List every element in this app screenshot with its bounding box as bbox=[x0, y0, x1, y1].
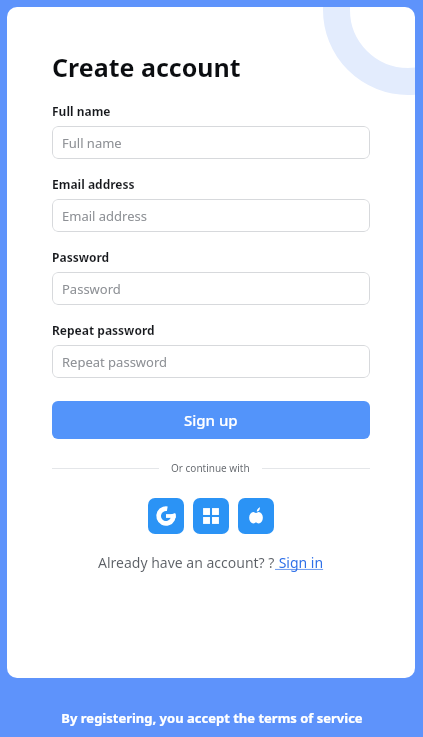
staticText: Sign in bbox=[275, 553, 324, 572]
staticText: Or continue with bbox=[171, 461, 250, 475]
button[interactable]: Full name bbox=[52, 126, 370, 159]
staticText: Password bbox=[52, 249, 110, 265]
staticText: By registering, you accept the terms of … bbox=[61, 709, 363, 727]
staticText: Already have an account? ? bbox=[98, 553, 275, 572]
button[interactable]: Sign up with Google bbox=[148, 498, 184, 534]
button[interactable]: Repeat password bbox=[52, 345, 370, 378]
button[interactable]: Sign up with Apple bbox=[238, 498, 274, 534]
button[interactable]: Sign in bbox=[275, 553, 324, 572]
staticText: Email address bbox=[52, 176, 135, 192]
button[interactable]: Sign up bbox=[52, 401, 370, 439]
staticText: Repeat password bbox=[62, 353, 168, 371]
staticText: Repeat password bbox=[52, 322, 155, 338]
staticText: Full name bbox=[62, 134, 122, 152]
button[interactable]: Email address bbox=[52, 199, 370, 232]
staticText: Password bbox=[62, 280, 121, 298]
staticText: Sign up bbox=[184, 410, 238, 430]
button[interactable]: Password bbox=[52, 272, 370, 305]
staticText: Email address bbox=[62, 207, 147, 225]
button[interactable]: Sign up with Microsoft bbox=[193, 498, 229, 534]
staticText: Full name bbox=[52, 103, 111, 119]
staticText: Create account bbox=[52, 50, 241, 84]
